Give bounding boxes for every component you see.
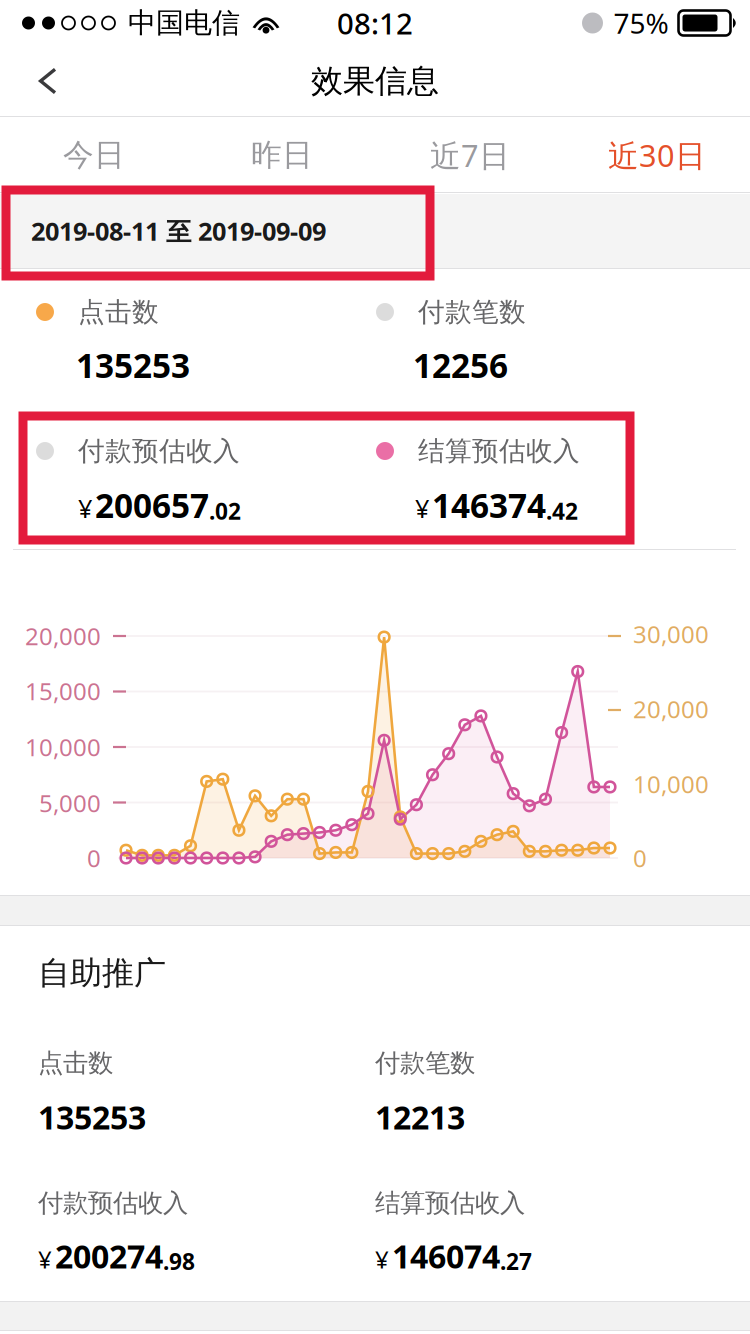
- staticText: 近7日: [430, 135, 510, 175]
- staticText: 10,000: [633, 768, 709, 800]
- button[interactable]: 今日: [0, 117, 188, 193]
- staticText: 今日: [63, 136, 125, 174]
- staticText: 15,000: [25, 675, 101, 707]
- staticText: 0: [87, 842, 101, 874]
- staticText: 近30日: [608, 135, 706, 175]
- staticText: 135253: [76, 343, 190, 387]
- staticText: 点击数: [38, 1047, 113, 1078]
- staticText: .27: [500, 1246, 532, 1276]
- staticText: 付款预估收入: [78, 435, 240, 467]
- staticText: 结算预估收入: [418, 435, 580, 467]
- staticText: 付款笔数: [418, 296, 526, 328]
- staticText: 12213: [375, 1096, 465, 1138]
- staticText: .42: [546, 496, 578, 526]
- staticText: 效果信息: [311, 61, 439, 101]
- staticText: 结算预估收入: [375, 1187, 525, 1218]
- staticText: 135253: [38, 1096, 146, 1138]
- button[interactable]: Back: [0, 46, 96, 116]
- staticText: 08:12: [337, 3, 413, 42]
- button[interactable]: 近30日: [564, 117, 750, 193]
- staticText: 200274: [55, 1235, 163, 1277]
- staticText: 75%: [613, 4, 668, 42]
- staticText: ¥: [375, 1243, 389, 1275]
- staticText: 30,000: [633, 618, 709, 650]
- staticText: 12256: [413, 343, 508, 387]
- staticText: 付款笔数: [375, 1047, 475, 1078]
- staticText: 5,000: [39, 787, 101, 819]
- button[interactable]: 2019-08-11 至 2019-09-09: [0, 194, 750, 268]
- staticText: .02: [209, 496, 241, 526]
- staticText: 2019-08-11 至 2019-09-09: [31, 214, 326, 248]
- staticText: ¥: [38, 1243, 52, 1275]
- staticText: ¥: [78, 491, 92, 525]
- staticText: 200657: [95, 483, 209, 527]
- staticText: 20,000: [25, 620, 101, 652]
- staticText: 146074: [392, 1235, 500, 1277]
- staticText: 0: [633, 842, 647, 874]
- staticText: 点击数: [78, 296, 159, 328]
- staticText: .98: [163, 1246, 195, 1276]
- staticText: 昨日: [251, 136, 313, 174]
- staticText: 146374: [432, 483, 546, 527]
- staticText: ¥: [415, 491, 429, 525]
- button[interactable]: 昨日: [188, 117, 376, 193]
- staticText: 20,000: [633, 693, 709, 725]
- staticText: 自助推广: [38, 953, 166, 993]
- staticText: 付款预估收入: [38, 1187, 188, 1218]
- staticText: 10,000: [25, 731, 101, 763]
- button[interactable]: 近7日: [376, 117, 564, 193]
- staticText: 中国电信: [128, 6, 240, 40]
